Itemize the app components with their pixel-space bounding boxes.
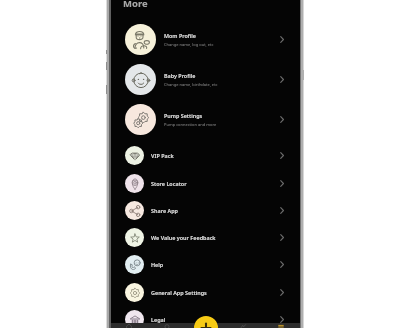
staticText: Share App xyxy=(151,207,178,214)
button[interactable]: Library xyxy=(224,323,262,328)
staticText: Baby Profile xyxy=(164,72,196,79)
staticText: Legal xyxy=(151,316,166,323)
staticText: General App Settings xyxy=(151,289,207,296)
staticText: VIP Pack xyxy=(151,152,174,159)
button[interactable]: Share App xyxy=(111,197,300,224)
button[interactable]: General App Settings xyxy=(111,279,300,306)
staticText: Mom Profile xyxy=(164,32,196,39)
staticText: Store Locator xyxy=(151,180,187,187)
button[interactable]: Legal xyxy=(111,306,300,328)
button[interactable]: Pump Settings xyxy=(111,99,300,139)
button[interactable]: More xyxy=(262,323,300,328)
button[interactable]: Mom Profile xyxy=(111,19,300,59)
staticText: Change name, birthdate, etc xyxy=(164,82,218,87)
button[interactable]: Help xyxy=(111,251,300,278)
button[interactable]: Home xyxy=(111,323,148,328)
staticText: Pump Settings xyxy=(164,112,203,119)
button[interactable]: Pumping xyxy=(148,323,186,328)
staticText: Change name, log out, etc xyxy=(164,42,214,47)
button[interactable]: More xyxy=(123,0,148,10)
button[interactable]: Add session xyxy=(194,316,218,328)
button[interactable]: VIP Pack xyxy=(111,142,300,169)
button[interactable]: Store Locator xyxy=(111,170,300,197)
button[interactable]: Baby Profile xyxy=(111,59,300,99)
staticText: We Value your Feedback xyxy=(151,234,216,241)
button[interactable]: We Value your Feedback xyxy=(111,224,300,251)
staticText: Pump connection and more xyxy=(164,122,217,127)
staticText: Help xyxy=(151,261,164,268)
